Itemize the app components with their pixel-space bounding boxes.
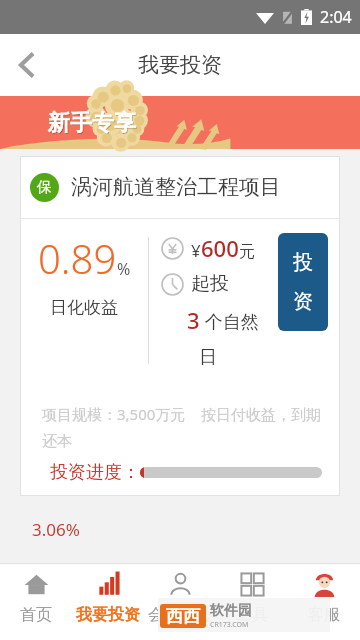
button[interactable]: 客服 [288,563,360,640]
staticText: 元 [239,242,255,262]
staticText: 工具 [236,605,268,625]
staticText: 0.89 [38,231,117,285]
staticText: 首页 [20,605,52,625]
button[interactable]: 投 [278,233,328,331]
button[interactable]: 会员中心 [144,563,216,640]
staticText: 项目规模：3,500万元 按日付收益，到期还本 [42,404,332,451]
staticText: 新手专享 [49,110,137,138]
staticText: 日化收益 [50,297,118,318]
button[interactable]: Back [0,38,54,92]
staticText: 会员中心 [148,605,212,625]
button[interactable]: 首页 [0,563,72,640]
staticText: 3.06% [32,518,80,541]
staticText: 资 [293,289,313,314]
staticText: 2:04 [320,6,352,28]
staticText: 3 [187,305,200,335]
staticText: 涡河航道整治工程项目 [71,174,281,200]
staticText: 保 [37,178,52,197]
button[interactable]: 保 [20,156,340,496]
staticText: CR173.COM [210,620,249,630]
staticText: 新手专享 [48,109,136,137]
staticText: ¥ [191,239,201,262]
button[interactable]: 工具 [216,563,288,640]
staticText: 日 [199,346,217,369]
staticText: 个自然 [200,309,259,334]
staticText: 投 [293,250,313,275]
staticText: 起投 [191,272,229,296]
staticText: 软件园 [210,602,252,620]
staticText: 西西 [166,606,200,627]
button[interactable]: 新手专享 [0,96,360,149]
button[interactable]: 我要投资 [72,563,144,640]
staticText: 投资进度： [50,461,140,484]
staticText: 客服 [308,605,340,625]
staticText: 我要投资 [76,605,140,625]
staticText: 我要投资 [138,52,222,78]
staticText: 600 [201,233,239,263]
staticText: % [117,258,131,280]
